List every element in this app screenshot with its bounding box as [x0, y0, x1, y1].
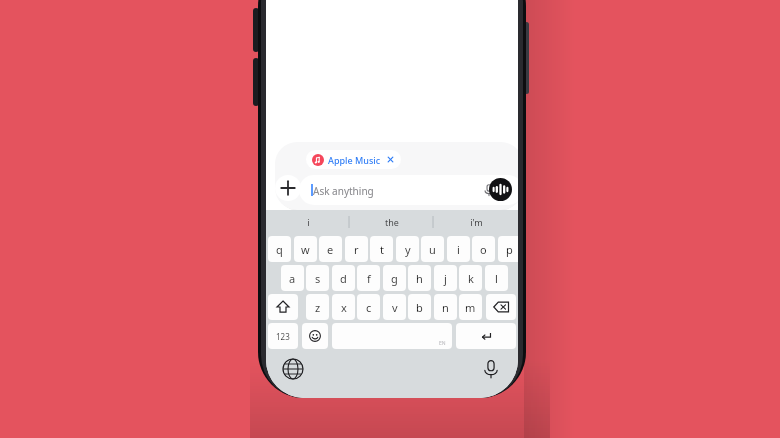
button[interactable]: y	[396, 236, 419, 262]
button[interactable]: Ask anything	[299, 175, 518, 205]
staticText: f	[367, 271, 371, 286]
staticText: the	[385, 216, 399, 228]
staticText: e	[327, 242, 334, 257]
staticText: r	[354, 242, 359, 257]
button[interactable]: Dictate	[480, 358, 502, 380]
button[interactable]: x	[332, 294, 355, 320]
staticText: n	[442, 300, 449, 315]
button[interactable]: e	[319, 236, 342, 262]
button[interactable]: Return	[456, 323, 516, 349]
staticText: k	[468, 271, 474, 286]
button[interactable]: Change language	[282, 358, 304, 380]
button[interactable]: w	[294, 236, 317, 262]
button[interactable]: f	[357, 265, 380, 291]
button[interactable]: l	[485, 265, 508, 291]
button[interactable]: r	[345, 236, 368, 262]
staticText: q	[276, 242, 283, 257]
staticText: 123	[276, 331, 290, 342]
staticText: b	[416, 300, 423, 315]
staticText: m	[465, 300, 476, 315]
button[interactable]: v	[383, 294, 406, 320]
button[interactable]: Shift	[268, 294, 298, 320]
button[interactable]: s	[306, 265, 329, 291]
staticText: i'm	[470, 216, 483, 228]
staticText: i	[457, 242, 460, 257]
button[interactable]: u	[421, 236, 444, 262]
button[interactable]: Voice mode	[489, 178, 512, 201]
button[interactable]: p	[498, 236, 518, 262]
button[interactable]: h	[408, 265, 431, 291]
staticText: p	[506, 242, 513, 257]
staticText: h	[416, 271, 423, 286]
button[interactable]: m	[459, 294, 482, 320]
staticText: i	[307, 216, 310, 228]
staticText: v	[392, 300, 398, 315]
button[interactable]: j	[434, 265, 457, 291]
staticText: EN	[439, 340, 446, 347]
button[interactable]: Add attachment	[275, 175, 301, 201]
button[interactable]: t	[370, 236, 393, 262]
button[interactable]: Space	[332, 323, 452, 349]
staticText: u	[429, 242, 436, 257]
staticText: c	[366, 300, 372, 315]
button[interactable]: a	[281, 265, 304, 291]
staticText: s	[315, 271, 321, 286]
button[interactable]: the	[350, 210, 434, 234]
staticText: d	[340, 271, 347, 286]
staticText: Apple Music	[328, 154, 381, 166]
button[interactable]: z	[306, 294, 329, 320]
button[interactable]: i	[447, 236, 470, 262]
button[interactable]: d	[332, 265, 355, 291]
staticText: a	[289, 271, 296, 286]
button[interactable]: o	[472, 236, 495, 262]
button[interactable]: q	[268, 236, 291, 262]
button[interactable]: g	[383, 265, 406, 291]
staticText: o	[480, 242, 487, 257]
staticText: y	[405, 242, 411, 257]
staticText: z	[315, 300, 321, 315]
staticText: j	[444, 271, 447, 286]
button[interactable]: i'm	[434, 210, 518, 234]
button[interactable]: k	[459, 265, 482, 291]
button[interactable]: Remove Apple Music	[386, 155, 395, 164]
button[interactable]: Apple Music	[306, 150, 401, 169]
button[interactable]: 123	[268, 323, 298, 349]
button[interactable]: n	[434, 294, 457, 320]
button[interactable]: b	[408, 294, 431, 320]
staticText: w	[301, 242, 310, 257]
button[interactable]: Emoji	[302, 323, 328, 349]
staticText: t	[380, 242, 384, 257]
staticText: x	[341, 300, 347, 315]
button[interactable]: Voice input	[482, 183, 496, 197]
button[interactable]: Backspace	[486, 294, 516, 320]
button[interactable]: c	[357, 294, 380, 320]
staticText: l	[495, 271, 498, 286]
button[interactable]: i	[266, 210, 350, 234]
staticText: g	[391, 271, 398, 286]
staticText: Ask anything	[313, 184, 374, 198]
